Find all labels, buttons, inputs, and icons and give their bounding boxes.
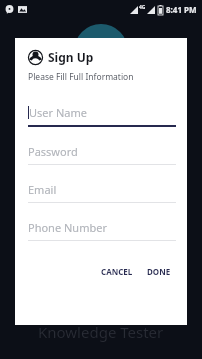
staticText: 8:41 PM [166,4,197,15]
staticText: Password [28,144,78,159]
staticText: 4G [139,4,146,11]
staticText: Sign Up [48,49,94,65]
button[interactable]: DONE [142,263,176,280]
staticText: Phone Number [28,220,107,235]
staticText: DONE [147,266,171,277]
staticText: User Name [29,105,87,120]
button[interactable]: Email [28,182,176,203]
button[interactable]: CANCEL [96,263,138,280]
staticText: Knowledge Tester [38,322,164,342]
staticText: Please Fill Full Information [28,71,134,83]
button[interactable]: Phone Number [28,220,176,241]
staticText: Email [28,182,57,197]
staticText: CANCEL [101,266,133,277]
button[interactable]: User Name [28,105,176,127]
button[interactable]: Password [28,144,176,165]
